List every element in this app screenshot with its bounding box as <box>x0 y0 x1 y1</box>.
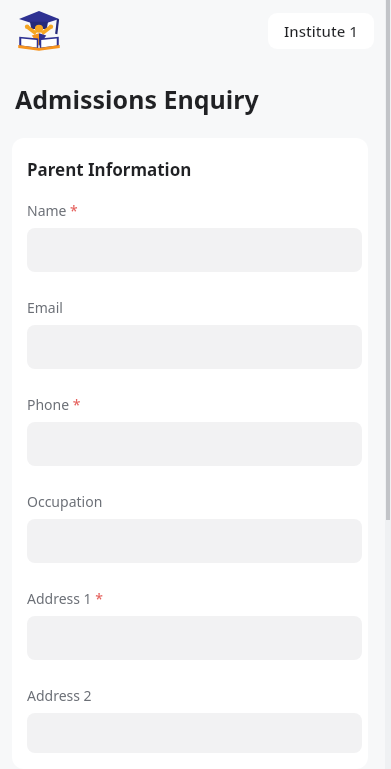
staticText: Parent Information <box>27 158 192 181</box>
staticText: Address 1 * <box>27 589 103 608</box>
button[interactable]: Institute logo <box>14 6 64 56</box>
staticText: Email <box>27 298 63 317</box>
staticText: Phone * <box>27 395 81 414</box>
button[interactable]: Institute 1 <box>268 13 374 49</box>
staticText: Admissions Enquiry <box>15 82 259 116</box>
staticText: Name * <box>27 201 78 220</box>
staticText: Institute 1 <box>284 21 358 41</box>
staticText: Address 2 <box>27 686 92 705</box>
staticText: Occupation <box>27 492 103 511</box>
